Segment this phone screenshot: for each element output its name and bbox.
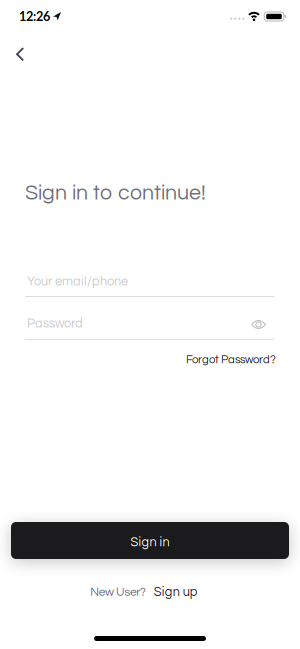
staticText: 12:26 bbox=[19, 8, 50, 24]
button[interactable]: Show password bbox=[245, 313, 272, 336]
button[interactable]: Your email/phone bbox=[25, 275, 274, 297]
staticText: Your email/phone bbox=[27, 275, 128, 288]
staticText: Sign up bbox=[154, 585, 198, 598]
staticText: Password bbox=[27, 317, 83, 330]
button[interactable]: Back bbox=[6, 37, 35, 72]
button[interactable]: Forgot Password? bbox=[186, 354, 276, 366]
staticText: Sign in to continue! bbox=[25, 182, 206, 204]
button[interactable]: Sign in bbox=[11, 522, 289, 559]
staticText: Forgot Password? bbox=[186, 354, 276, 366]
staticText: Sign in bbox=[130, 536, 169, 549]
button[interactable]: Sign up bbox=[154, 585, 198, 598]
button[interactable]: Password bbox=[25, 317, 274, 339]
staticText: New User? bbox=[90, 586, 146, 598]
